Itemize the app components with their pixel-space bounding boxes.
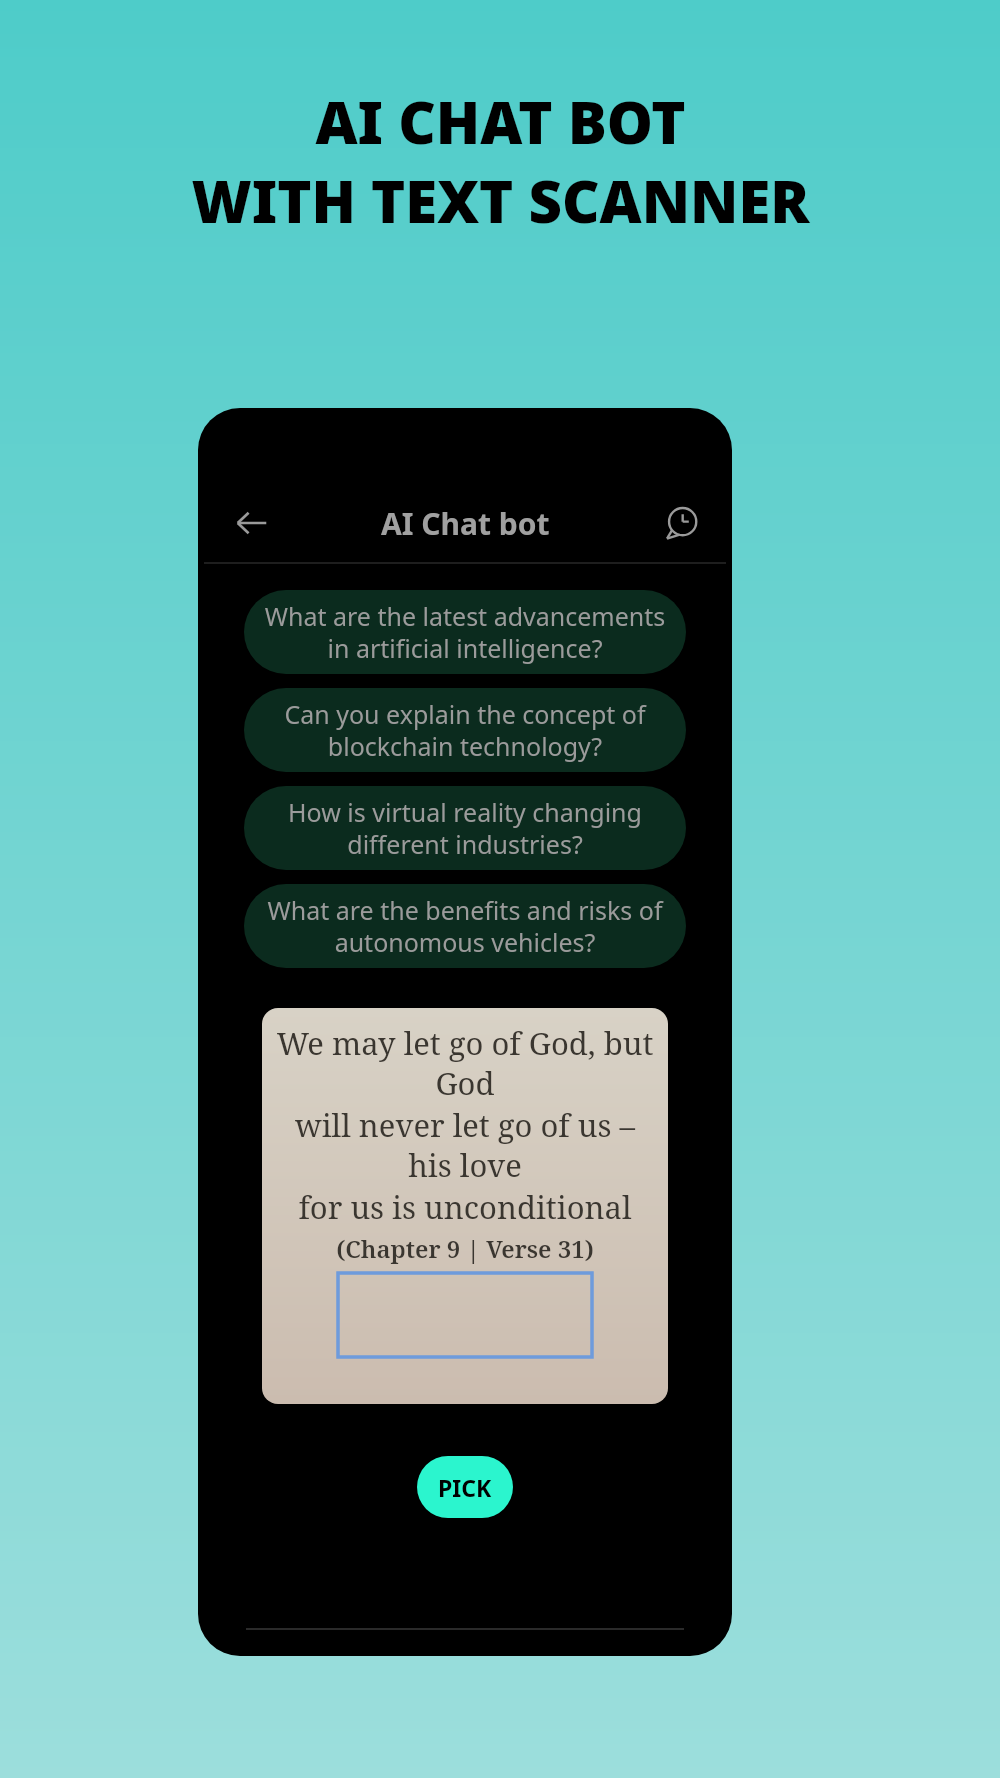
staticText: How is virtual reality changing differen…	[264, 795, 666, 861]
button[interactable]: Back	[224, 495, 280, 551]
button[interactable]: What are the latest advancements in arti…	[244, 590, 686, 674]
staticText: AI CHAT BOT	[315, 82, 686, 161]
button[interactable]: What are the benefits and risks of auton…	[244, 884, 686, 968]
staticText: AI Chat bot	[381, 503, 550, 544]
button[interactable]: History	[654, 495, 710, 551]
staticText: Can you explain the concept of blockchai…	[264, 697, 666, 763]
staticText: WITH TEXT SCANNER	[191, 161, 810, 240]
staticText: (Chapter 9 | Verse 31)	[336, 1232, 594, 1265]
button[interactable]: We may let go of God, but God	[262, 1008, 668, 1404]
staticText: PICK	[438, 1472, 492, 1503]
button[interactable]: How is virtual reality changing differen…	[244, 786, 686, 870]
staticText: What are the benefits and risks of auton…	[264, 893, 666, 959]
button[interactable]: Can you explain the concept of blockchai…	[244, 688, 686, 772]
staticText: for us is unconditional	[298, 1186, 632, 1228]
staticText: We may let go of God, but God	[270, 1022, 660, 1104]
staticText: will never let go of us – his love	[270, 1104, 660, 1186]
staticText: What are the latest advancements in arti…	[264, 599, 666, 665]
button[interactable]: PICK	[417, 1456, 513, 1518]
